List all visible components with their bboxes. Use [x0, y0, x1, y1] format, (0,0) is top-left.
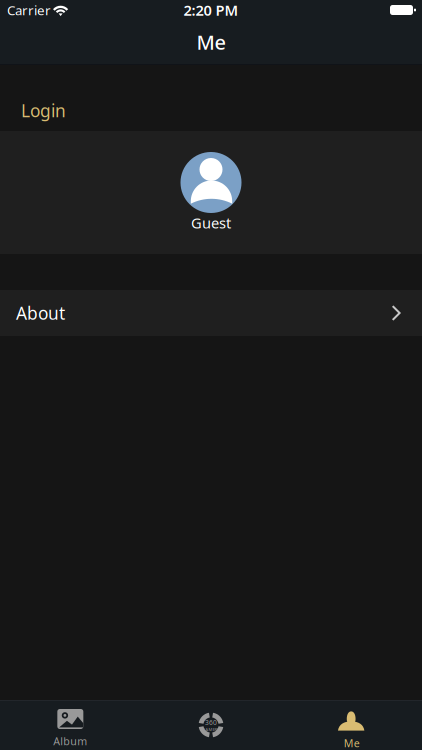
staticText: 2:20 PM: [183, 0, 238, 20]
button[interactable]: Me: [281, 701, 422, 750]
staticText: Me: [196, 29, 225, 55]
staticText: 360: [205, 718, 217, 727]
staticText: About: [16, 301, 65, 324]
staticText: Carrier: [7, 1, 51, 19]
button[interactable]: Album: [0, 701, 141, 750]
staticText: Me: [344, 736, 360, 750]
staticText: CAMERA: [202, 727, 219, 732]
staticText: Login: [21, 99, 66, 122]
button[interactable]: About: [0, 290, 422, 336]
staticText: Album: [53, 734, 87, 748]
button[interactable]: 360 Camera: [141, 701, 281, 750]
staticText: Guest: [191, 213, 231, 232]
